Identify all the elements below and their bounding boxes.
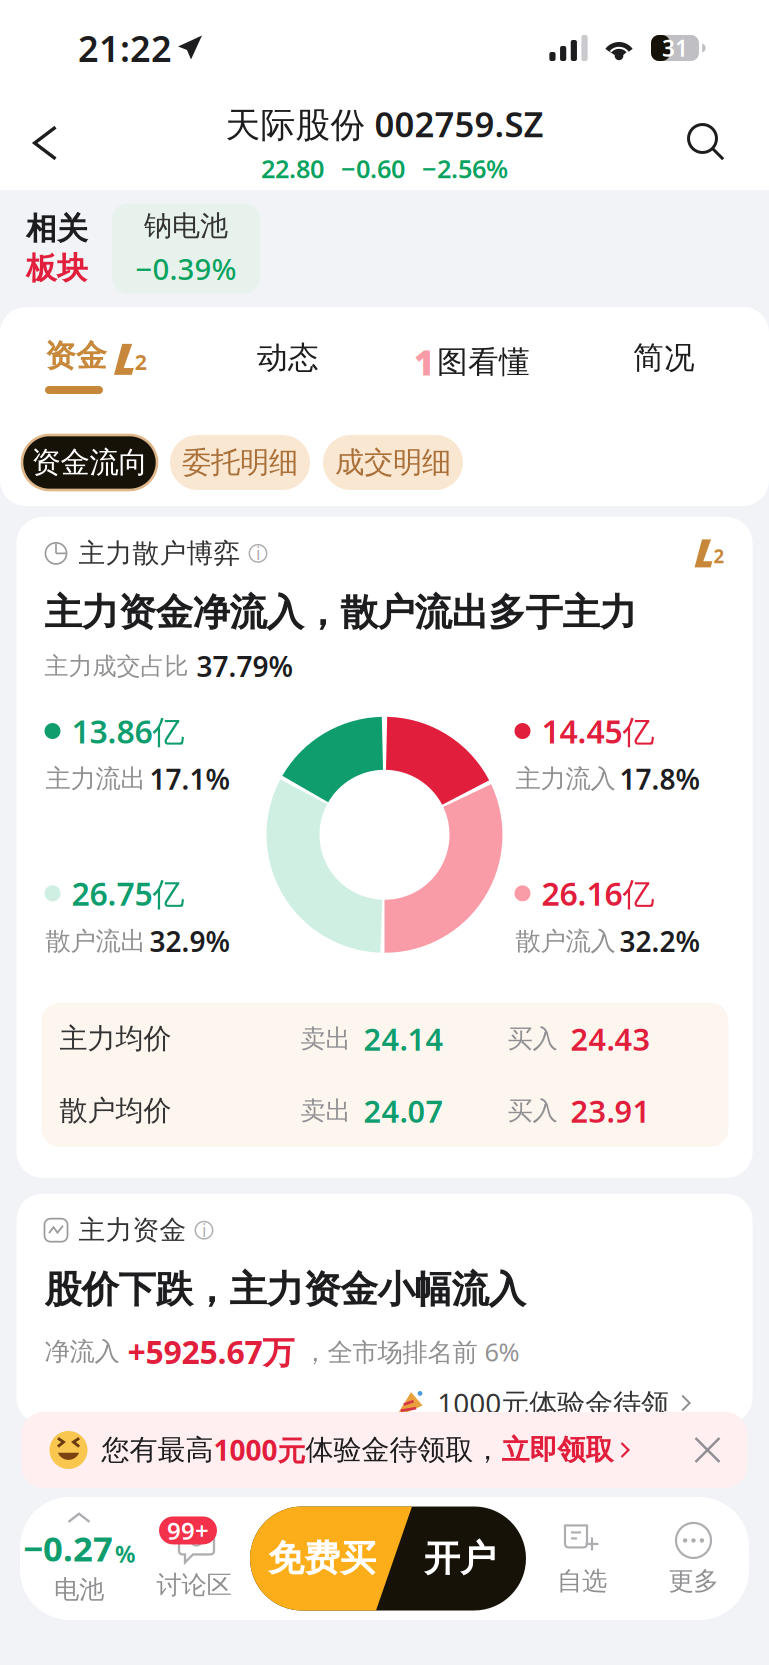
staticText: 卖出	[300, 1095, 350, 1126]
button[interactable]: 成交明细	[323, 435, 463, 490]
button[interactable]: Search	[645, 96, 769, 190]
staticText: −2.56%	[422, 152, 508, 185]
staticText: 天际股份 002759.SZ	[225, 101, 543, 147]
staticText: 动态	[257, 339, 319, 377]
staticText: 股价下跌，主力资金小幅流入	[44, 1266, 525, 1312]
staticText: 散户流出	[45, 926, 145, 957]
staticText: 1	[414, 339, 434, 385]
staticText: 散户流入	[515, 926, 615, 957]
staticText: 32.9%	[149, 923, 230, 960]
staticText: i	[256, 542, 260, 565]
button[interactable]: 1	[365, 307, 579, 435]
staticText: 主力流入	[515, 763, 615, 794]
button[interactable]: 更多	[638, 1497, 749, 1620]
staticText: 散户均价	[59, 1094, 171, 1128]
staticText: 主力成交占比	[44, 651, 188, 681]
staticText: 成交明细	[335, 444, 451, 480]
staticText: 1000元体验金待领	[437, 1384, 669, 1422]
staticText: %	[115, 1539, 135, 1569]
staticText: 1000元	[213, 1431, 305, 1469]
staticText: 31	[662, 33, 688, 63]
button[interactable]: 资金	[0, 307, 211, 435]
staticText: 32.2%	[619, 923, 700, 960]
staticText: 钠电池	[144, 209, 228, 243]
staticText: 2	[713, 544, 724, 568]
button[interactable]: 开户	[394, 1506, 526, 1610]
staticText: 26.16亿	[541, 872, 654, 915]
button[interactable]: 免费买	[250, 1506, 394, 1610]
staticText: 相关	[26, 210, 88, 247]
staticText: ，全市场排名前 6%	[302, 1335, 519, 1368]
staticText: 主力资金	[78, 1214, 186, 1247]
staticText: 17.8%	[619, 760, 700, 797]
staticText: i	[202, 1219, 206, 1242]
staticText: 26.75亿	[71, 872, 184, 915]
staticText: 体验金待领取，	[305, 1433, 501, 1467]
staticText: 净流入	[44, 1336, 119, 1367]
staticText: +5925.67万	[127, 1330, 294, 1373]
staticText: 资金	[45, 337, 107, 375]
staticText: 13.86亿	[71, 710, 184, 752]
button[interactable]: 自选	[526, 1497, 638, 1620]
button[interactable]: Back	[0, 96, 88, 190]
staticText: 24.14	[363, 1018, 443, 1059]
staticText: 24.43	[570, 1018, 650, 1059]
button[interactable]: 99+	[138, 1497, 250, 1620]
staticText: 立即领取	[501, 1433, 613, 1467]
button[interactable]: −0.27	[20, 1497, 138, 1620]
staticText: 主力资金净流入，散户流出多于主力	[44, 590, 636, 636]
staticText: 37.79%	[196, 648, 293, 685]
staticText: 99+	[167, 1514, 209, 1546]
staticText: 17.1%	[149, 760, 230, 797]
staticText: 讨论区	[156, 1569, 231, 1600]
staticText: 您有最高	[101, 1433, 213, 1467]
button[interactable]: 钠电池	[112, 203, 260, 293]
staticText: −0.39%	[135, 249, 236, 288]
staticText: 24.07	[363, 1090, 443, 1131]
staticText: 免费买	[268, 1536, 376, 1581]
staticText: 主力散户博弈	[78, 537, 240, 570]
button[interactable]: 动态	[211, 307, 365, 435]
staticText: −0.60	[341, 152, 405, 185]
staticText: 买入	[507, 1023, 557, 1054]
staticText: 资金流向	[31, 444, 147, 480]
staticText: 板块	[26, 249, 88, 287]
staticText: 主力流出	[45, 763, 145, 794]
staticText: 更多	[668, 1565, 718, 1596]
staticText: 图看懂	[437, 343, 530, 381]
button[interactable]: 1000元体验金待领	[371, 1370, 713, 1436]
staticText: 买入	[507, 1095, 557, 1126]
button[interactable]: 简况	[579, 307, 749, 435]
staticText: 2	[135, 347, 147, 376]
staticText: 电池	[54, 1574, 104, 1605]
button[interactable]: Close	[667, 1412, 747, 1488]
staticText: 14.45亿	[541, 710, 654, 752]
staticText: −0.27	[23, 1525, 113, 1571]
staticText: 自选	[557, 1565, 607, 1596]
button[interactable]: 资金流向	[22, 435, 157, 490]
staticText: 卖出	[300, 1023, 350, 1054]
staticText: 21:22	[78, 24, 172, 72]
staticText: 委托明细	[182, 444, 298, 480]
staticText: 23.91	[570, 1090, 650, 1131]
button[interactable]: 委托明细	[170, 435, 310, 490]
staticText: 开户	[424, 1536, 496, 1581]
staticText: 22.80	[261, 152, 324, 185]
staticText: 主力均价	[59, 1022, 171, 1056]
staticText: 简况	[633, 339, 695, 377]
